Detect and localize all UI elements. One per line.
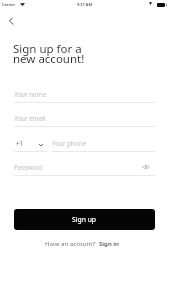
button[interactable]: Country code +1 — [14, 136, 47, 151]
button[interactable]: Sign in — [99, 239, 119, 247]
button[interactable]: Your email — [14, 111, 155, 126]
button[interactable]: Password — [14, 160, 155, 175]
staticText: Sign in — [99, 239, 119, 247]
staticText: +1 — [16, 139, 24, 148]
staticText: Password — [14, 163, 43, 172]
staticText: Your email — [14, 114, 46, 123]
staticText: 9:37 AM — [77, 2, 92, 7]
button[interactable]: Back — [3, 13, 19, 29]
staticText: Have an account? — [45, 239, 96, 247]
button[interactable]: Show password — [140, 161, 152, 173]
staticText: Your name — [14, 90, 47, 99]
staticText: Carrier — [2, 2, 16, 7]
button[interactable]: Your name — [14, 87, 155, 102]
button[interactable]: Your phone — [52, 136, 155, 151]
staticText: Sign up — [72, 215, 97, 224]
button[interactable]: Sign up — [14, 209, 155, 230]
staticText: Sign up for a new account! — [13, 41, 85, 66]
staticText: Your phone — [52, 139, 87, 148]
